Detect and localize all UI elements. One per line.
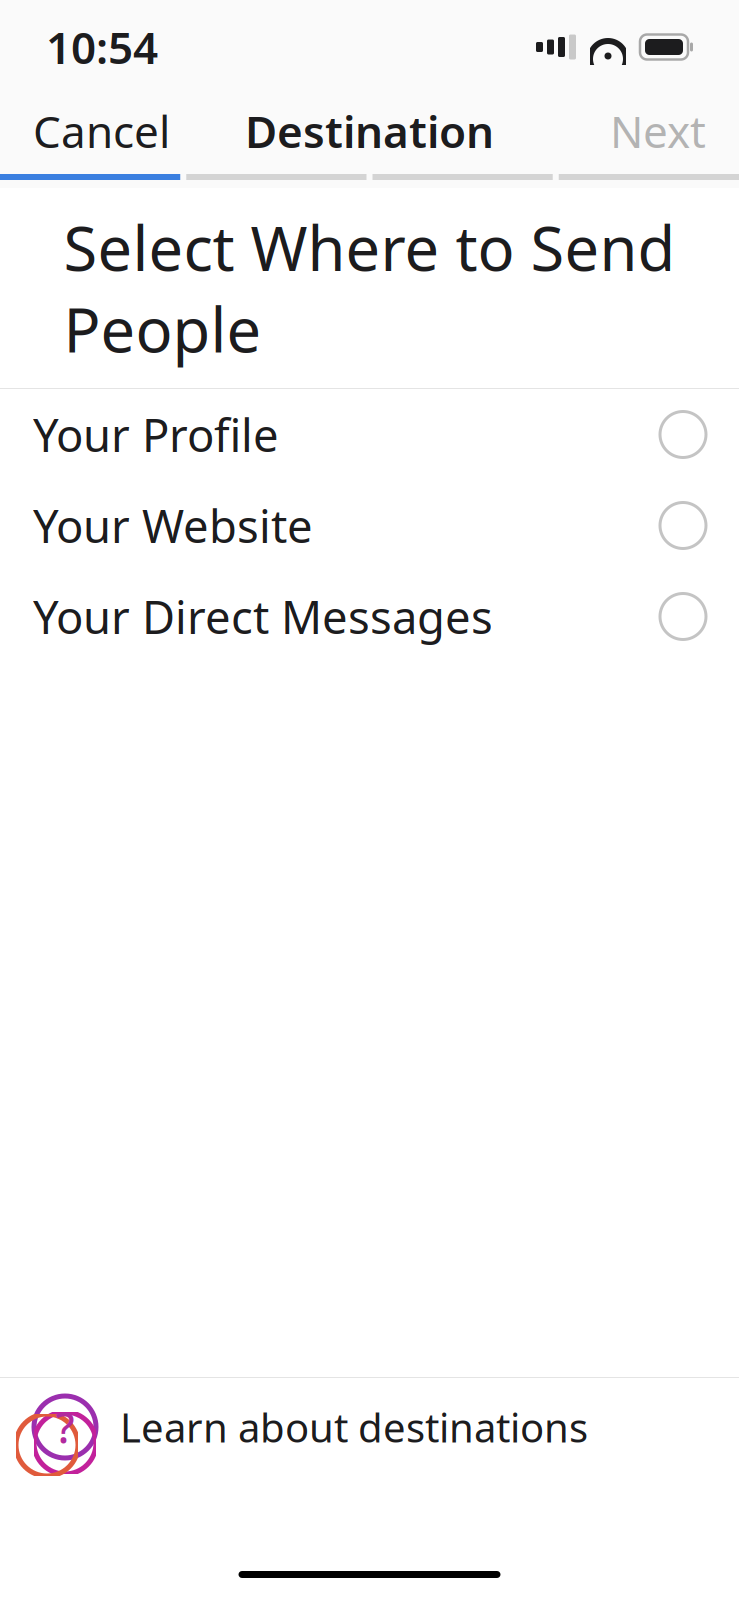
staticText: Your Direct Messages	[33, 586, 493, 647]
button[interactable]: Your Website	[0, 480, 739, 571]
staticText: Next	[610, 102, 706, 160]
button[interactable]: Your Profile	[0, 389, 739, 480]
staticText: ?	[55, 1399, 74, 1455]
staticText: Cancel	[33, 102, 170, 160]
button[interactable]: Cancel	[0, 94, 203, 168]
button[interactable]: ?	[0, 1378, 739, 1476]
button[interactable]: Your Direct Messages	[0, 571, 739, 662]
staticText: Your Profile	[33, 404, 279, 465]
staticText: Destination	[245, 102, 494, 160]
staticText: 10:54	[46, 18, 158, 76]
button[interactable]: Next	[577, 94, 739, 168]
staticText: Your Website	[33, 495, 313, 556]
staticText: Select Where to Send People	[63, 207, 675, 369]
staticText: Learn about destinations	[120, 1400, 588, 1453]
